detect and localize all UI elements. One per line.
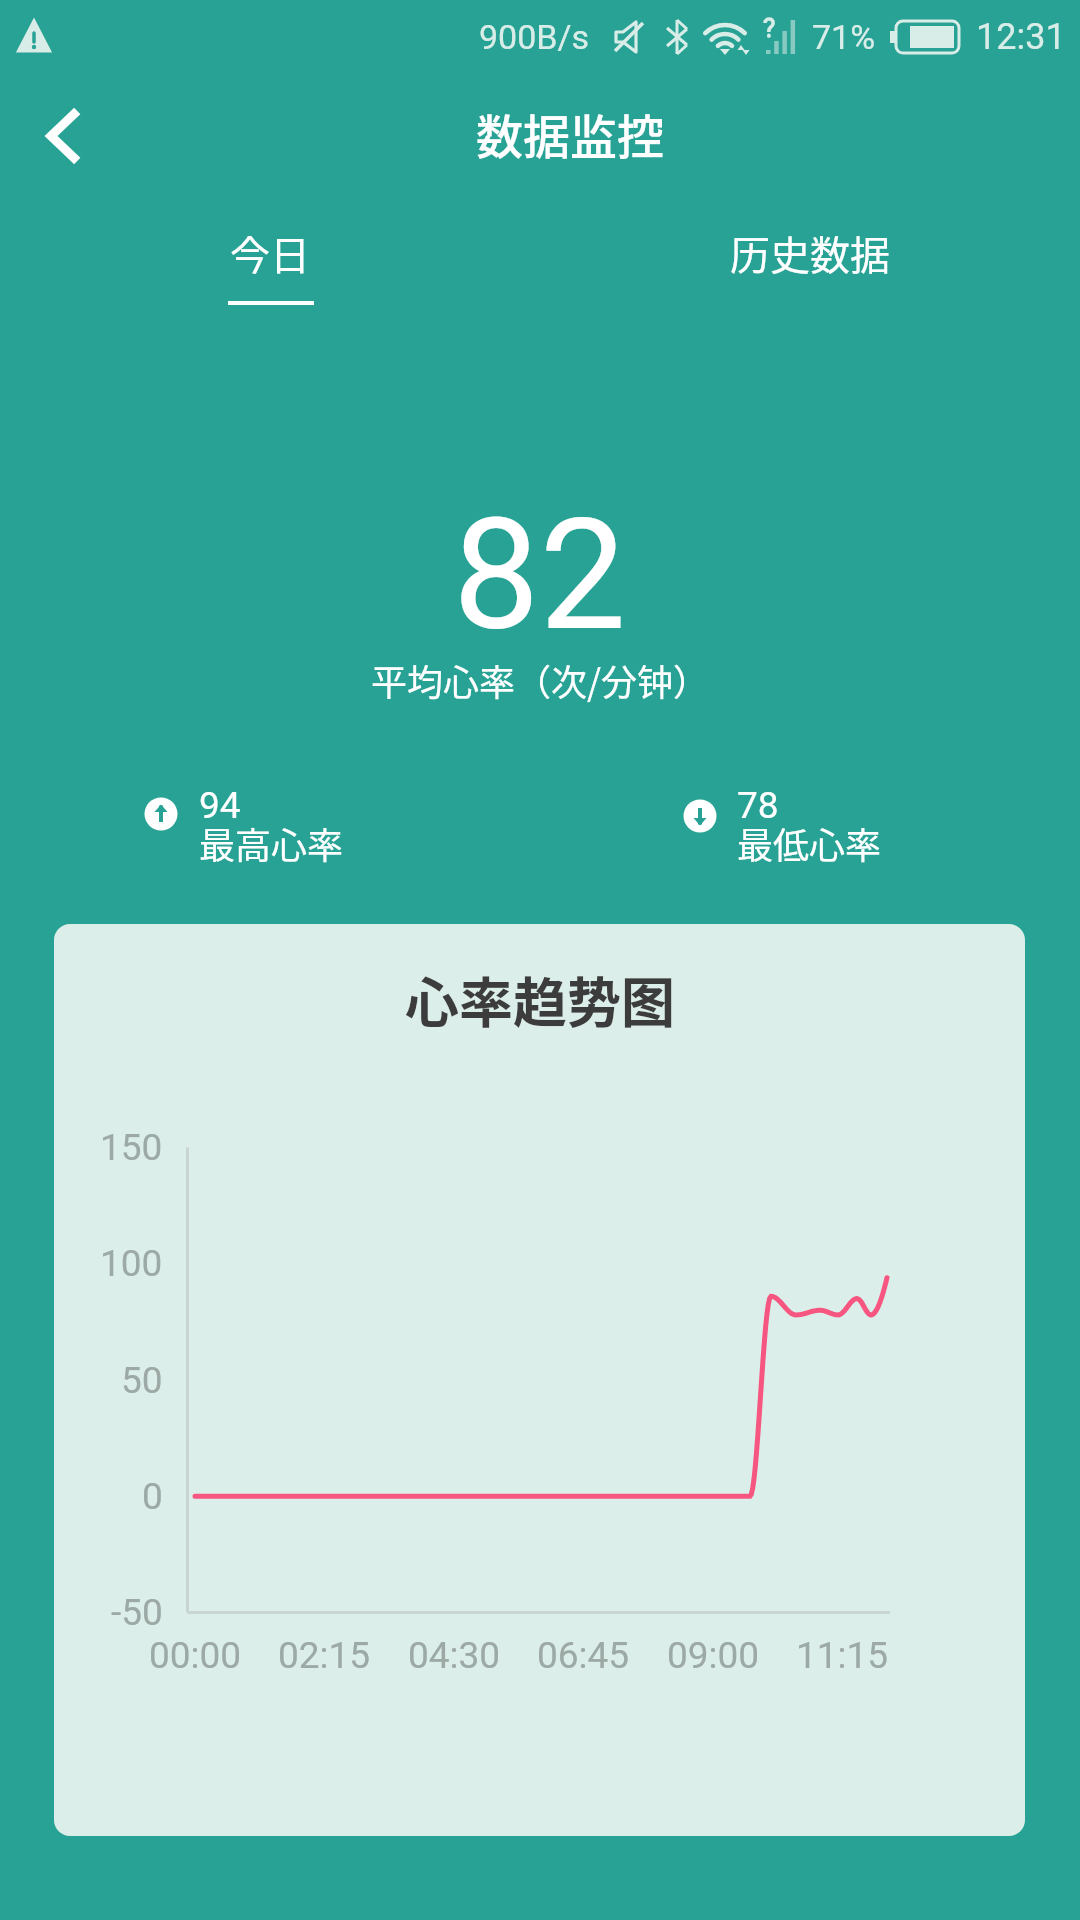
staticText: -50 [111,1591,163,1634]
staticText: 04:30 [408,1634,501,1677]
staticText: 09:00 [667,1634,760,1677]
staticText: 最高心率 [199,817,344,869]
button[interactable] [0,214,540,324]
button[interactable] [30,103,94,171]
staticText: 100 [100,1242,163,1285]
staticText: 50 [121,1359,163,1402]
staticText: 06:45 [537,1634,630,1677]
staticText: 最低心率 [737,817,882,869]
button[interactable] [540,214,1080,324]
staticText: 94 [199,784,241,827]
staticText: 900B/s [479,17,590,57]
staticText: 150 [100,1126,163,1169]
staticText: 82 [453,485,627,665]
staticText: ? [763,13,776,43]
staticText: 02:15 [278,1634,371,1677]
staticText: 心率趋势图 [405,960,675,1038]
staticText: 12:31 [976,16,1066,58]
staticText: 今日 [230,224,310,282]
staticText: 11:15 [796,1634,889,1677]
staticText: 历史数据 [730,224,890,282]
staticText: 0 [142,1475,163,1518]
staticText: 71% [812,17,876,57]
staticText: 78 [737,784,779,827]
staticText: 平均心率（次/分钟） [371,654,710,706]
staticText: 00:00 [149,1634,242,1677]
staticText: 数据监控 [476,99,664,167]
